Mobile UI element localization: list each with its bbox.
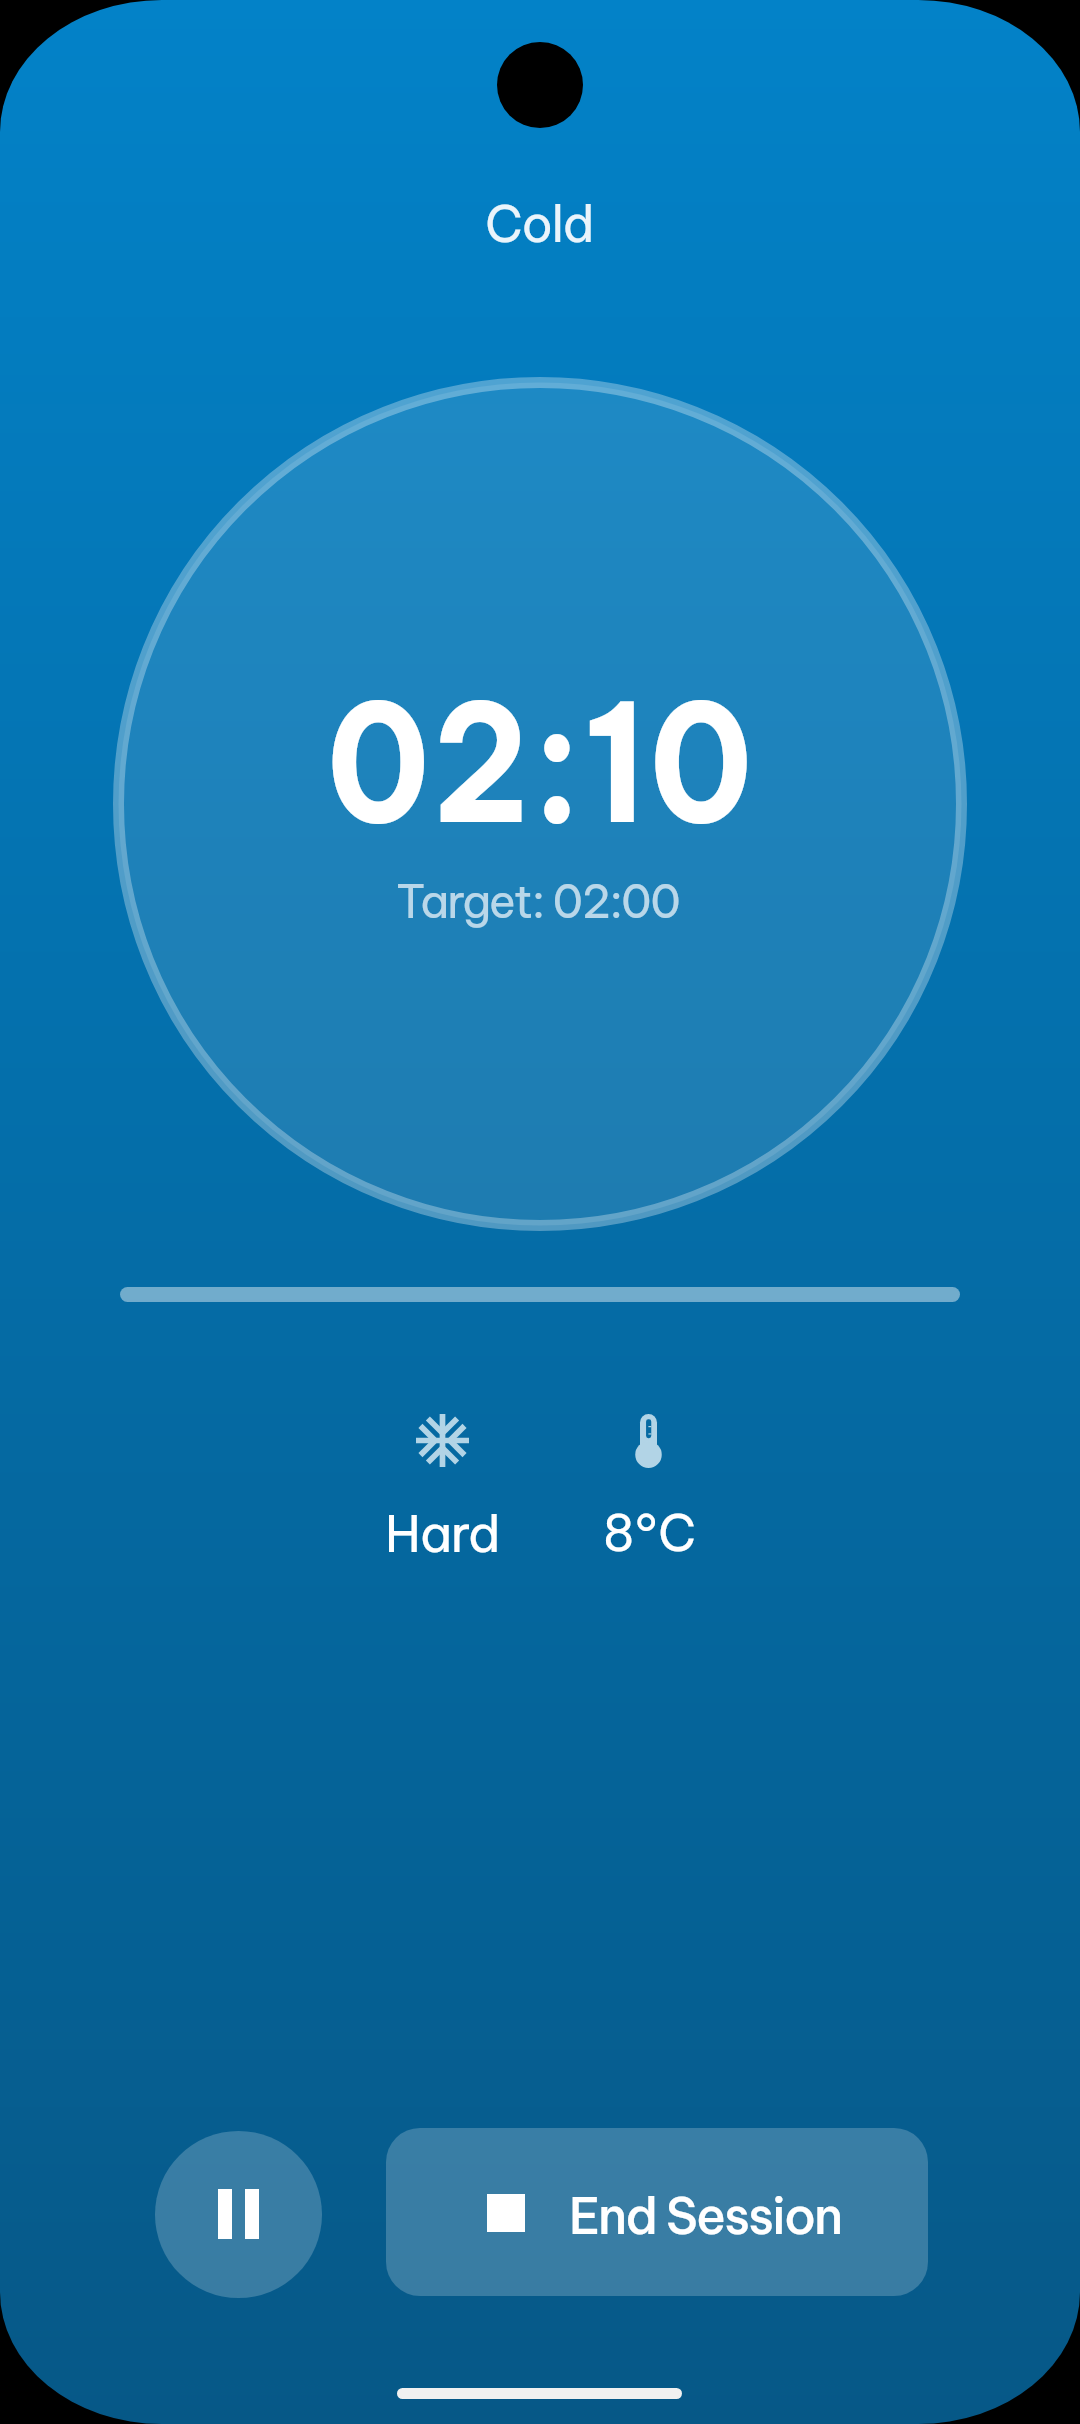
staticText: End Session [569,2184,842,2247]
staticText: Target: 02:00 [396,873,680,930]
staticText: 02:10 [327,658,755,865]
button[interactable]: Pause [155,2131,322,2298]
staticText: Cold [485,193,594,255]
button[interactable] [386,2128,928,2296]
staticText: 8°C [603,1502,697,1564]
staticText: Hard [385,1502,500,1566]
